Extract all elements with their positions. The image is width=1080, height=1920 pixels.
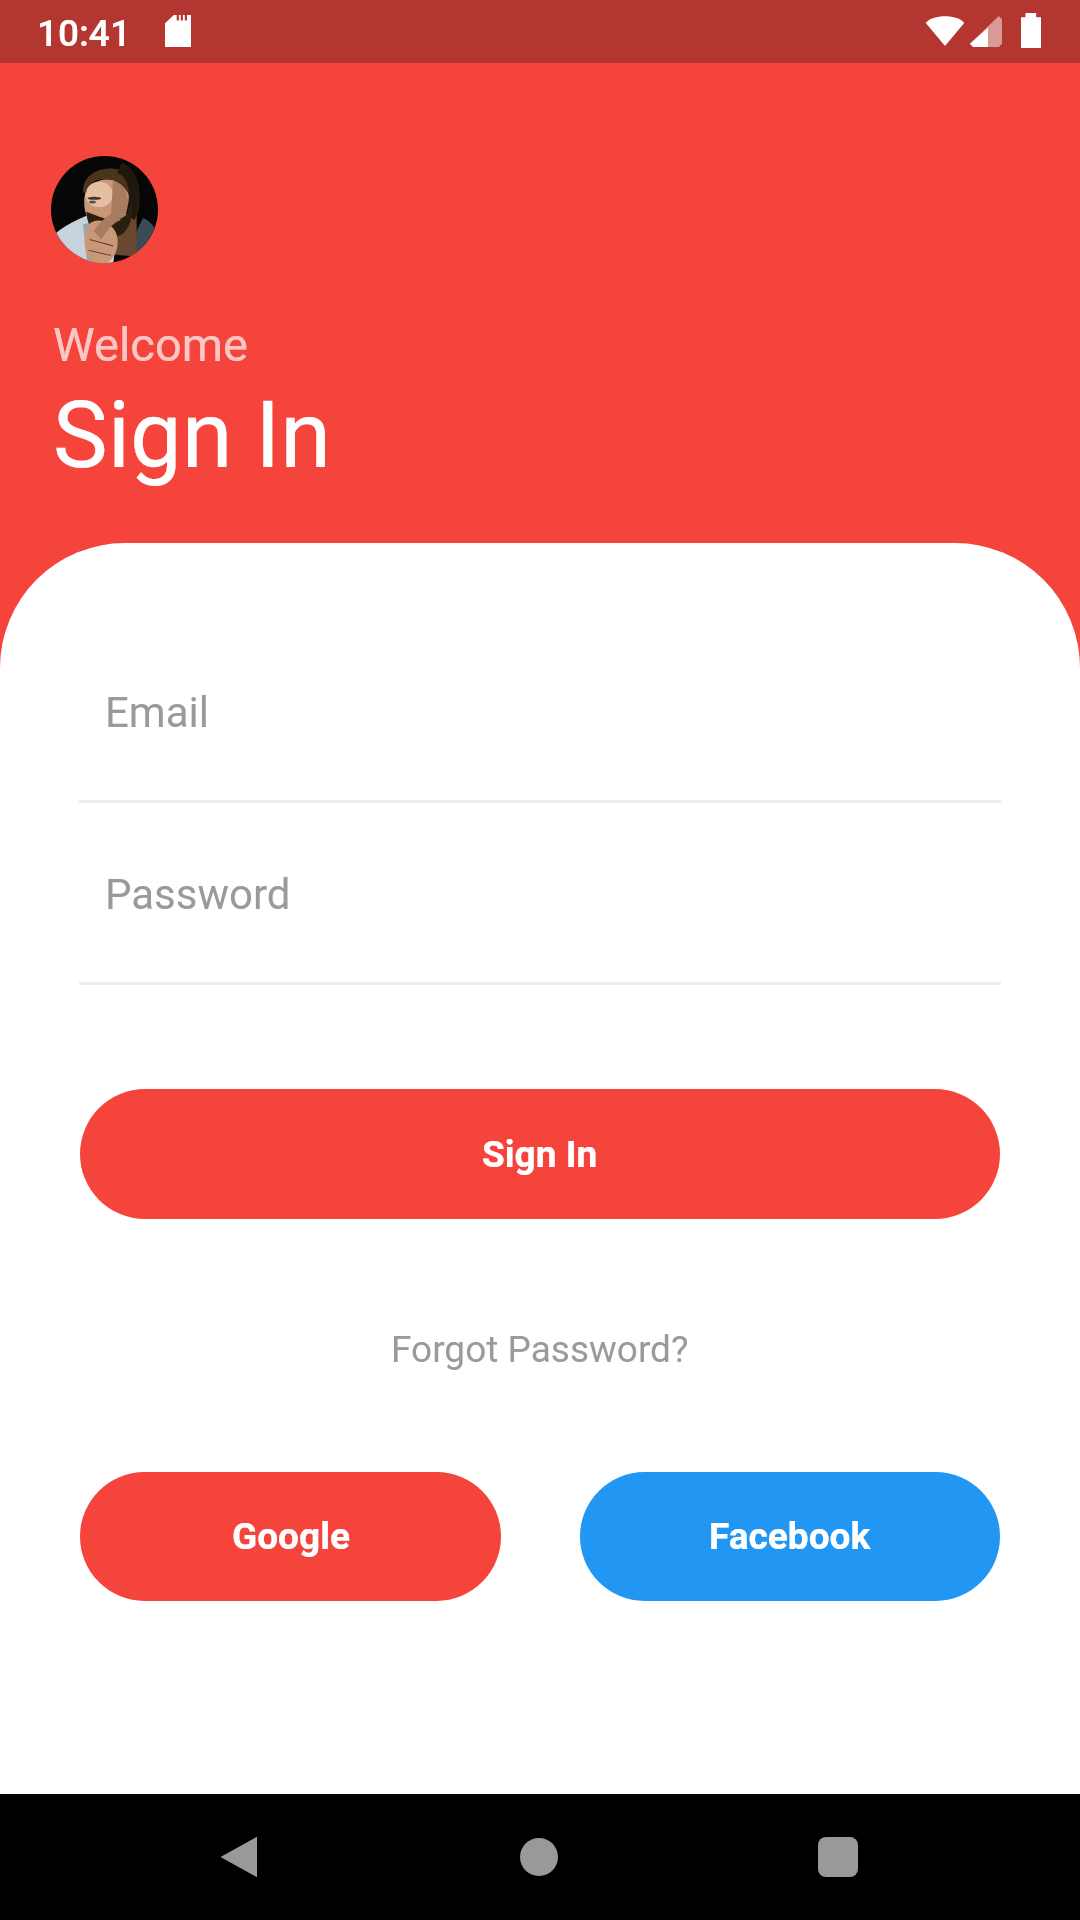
- staticText: Sign In: [482, 1133, 598, 1176]
- button[interactable]: Forgot Password?: [340, 1303, 740, 1395]
- button[interactable]: Back: [178, 1794, 298, 1920]
- button[interactable]: Profile photo: [51, 156, 158, 263]
- staticText: Sign In: [53, 382, 332, 490]
- staticText: Welcome: [53, 317, 248, 372]
- staticText: Password: [105, 870, 291, 919]
- button[interactable]: Email field: [79, 660, 1001, 803]
- button[interactable]: Recent apps: [778, 1794, 898, 1920]
- button[interactable]: Google: [80, 1472, 501, 1601]
- button[interactable]: Facebook: [580, 1472, 1000, 1601]
- button[interactable]: Sign In: [80, 1089, 1000, 1219]
- staticText: Google: [232, 1515, 350, 1558]
- button[interactable]: Home: [479, 1794, 599, 1920]
- staticText: Forgot Password?: [391, 1328, 689, 1371]
- staticText: 10:41: [37, 12, 131, 55]
- staticText: Facebook: [709, 1515, 871, 1558]
- staticText: Email: [105, 688, 209, 737]
- button[interactable]: Password field: [79, 842, 1001, 985]
- other: SD card: [165, 15, 191, 47]
